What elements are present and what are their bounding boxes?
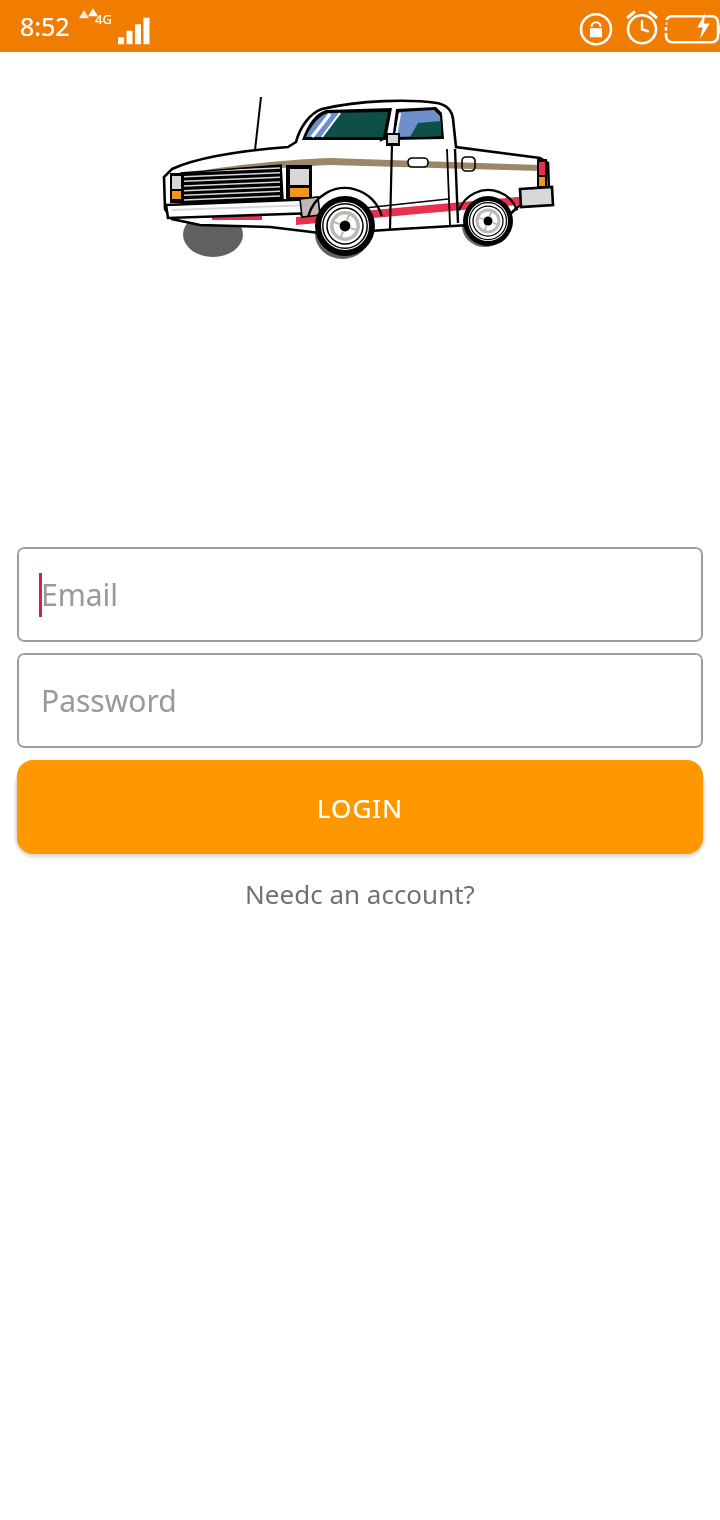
staticText: Password (41, 680, 177, 721)
staticText: 4G (95, 10, 112, 28)
button[interactable]: Email (17, 547, 703, 642)
other: Charging (694, 13, 712, 39)
staticText: 8:52 (20, 9, 70, 43)
button[interactable]: LOGIN (17, 760, 703, 854)
staticText: Needc an account? (245, 876, 475, 911)
button[interactable]: Password (17, 653, 703, 748)
staticText: 59 (662, 14, 683, 39)
button[interactable]: Needc an account? (233, 872, 487, 915)
staticText: Email (41, 574, 119, 615)
staticText: LOGIN (317, 790, 403, 825)
